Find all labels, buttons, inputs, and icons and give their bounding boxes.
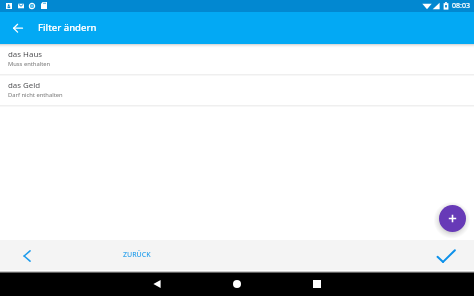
button[interactable]: Add bbox=[439, 205, 466, 232]
button[interactable]: Confirm bbox=[434, 244, 458, 268]
staticText: 08:03 bbox=[452, 1, 470, 11]
button[interactable]: Recent apps bbox=[305, 272, 329, 295]
button[interactable]: Navigate back bbox=[6, 15, 30, 39]
staticText: das Haus bbox=[8, 49, 43, 60]
button[interactable]: Back bbox=[145, 272, 169, 295]
staticText: Muss enthalten bbox=[8, 60, 51, 68]
staticText: Filter ändern bbox=[38, 21, 97, 34]
button[interactable]: das Haus bbox=[0, 44, 474, 75]
button[interactable]: Home bbox=[225, 272, 249, 295]
button[interactable]: Previous step bbox=[15, 244, 39, 268]
staticText: das Geld bbox=[8, 80, 41, 91]
button[interactable]: ZURÜCK bbox=[117, 246, 157, 264]
staticText: ZURÜCK bbox=[123, 250, 151, 260]
staticText: Darf nicht enthalten bbox=[8, 91, 63, 99]
button[interactable]: das Geld bbox=[0, 75, 474, 106]
